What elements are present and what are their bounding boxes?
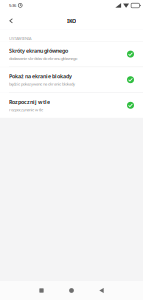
button[interactable]: Skróty ekranu głównego <box>0 42 143 67</box>
button[interactable]: Home <box>56 282 86 298</box>
staticText: będzie pokazywane na ekranie blokady <box>9 81 75 87</box>
staticText: Rozpocznij w tle <box>9 98 50 105</box>
button[interactable]: Recent apps <box>26 282 56 298</box>
staticText: Skróty ekranu głównego <box>9 47 68 54</box>
button[interactable]: Back <box>0 14 19 28</box>
staticText: rozpoczynanie w tle <box>9 107 43 112</box>
staticText: Pokaż na ekranie blokady <box>9 73 72 80</box>
button[interactable]: Pokaż na ekranie blokady <box>0 67 143 92</box>
staticText: dodawanie skrótów do ekranu głównego <box>9 56 77 61</box>
staticText: IKO <box>67 17 76 24</box>
staticText: 5:36 <box>9 3 16 8</box>
staticText: USTAWIENIA <box>9 36 32 41</box>
button[interactable]: Rozpocznij w tle <box>0 93 143 118</box>
button[interactable]: Back <box>86 282 116 298</box>
